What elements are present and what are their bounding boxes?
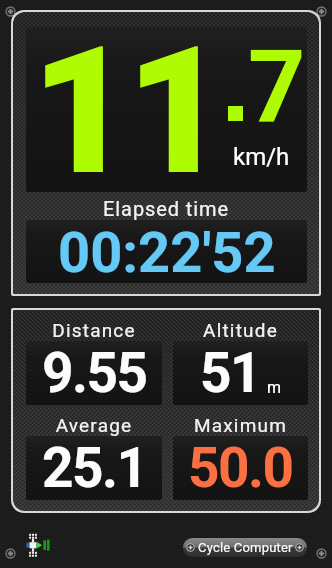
staticText: 9.55 <box>42 341 147 405</box>
staticText: Elapsed time <box>13 197 319 220</box>
staticText: 00:22'52 <box>58 220 276 283</box>
button[interactable]: Cycle Computer <box>183 538 307 557</box>
button[interactable]: GPS signal <box>26 533 50 557</box>
staticText: 25.1 <box>42 436 147 500</box>
staticText: 50.0 <box>188 436 293 500</box>
staticText: 51 <box>200 341 261 405</box>
staticText: m <box>267 378 282 397</box>
staticText: Altitude <box>173 319 308 341</box>
staticText: Cycle Computer <box>198 540 293 555</box>
staticText: 7 <box>248 28 306 145</box>
staticText: Average <box>26 414 162 436</box>
staticText: Distance <box>26 319 162 341</box>
staticText: km/h <box>233 143 290 171</box>
staticText: Maximum <box>173 414 308 436</box>
staticText: 11 <box>31 27 222 174</box>
